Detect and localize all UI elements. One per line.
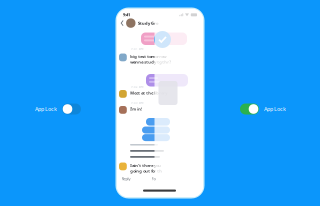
staticText: 9:41 AM xyxy=(131,47,143,50)
staticText: wanna study tgthr? xyxy=(130,59,171,65)
staticText: I ain't there you xyxy=(130,163,161,168)
staticText: App Lock xyxy=(35,105,57,113)
button[interactable]: Fo xyxy=(151,175,156,182)
button[interactable]: Reply xyxy=(121,175,131,182)
staticText: I'm in! xyxy=(130,106,142,112)
staticText: 9:43 AM xyxy=(131,101,143,104)
staticText: Meet at the library xyxy=(130,90,167,96)
staticText: App Lock xyxy=(264,105,286,113)
staticText: Fo xyxy=(151,176,155,181)
staticText: big test tomorrow xyxy=(130,54,166,59)
staticText: Reply xyxy=(121,176,130,181)
button[interactable]: Back xyxy=(118,17,126,29)
staticText: 9:41 xyxy=(123,12,130,17)
staticText: going out for th xyxy=(130,168,162,174)
staticText: 9:42 AM xyxy=(131,85,143,88)
staticText: Study Gro xyxy=(138,20,159,26)
